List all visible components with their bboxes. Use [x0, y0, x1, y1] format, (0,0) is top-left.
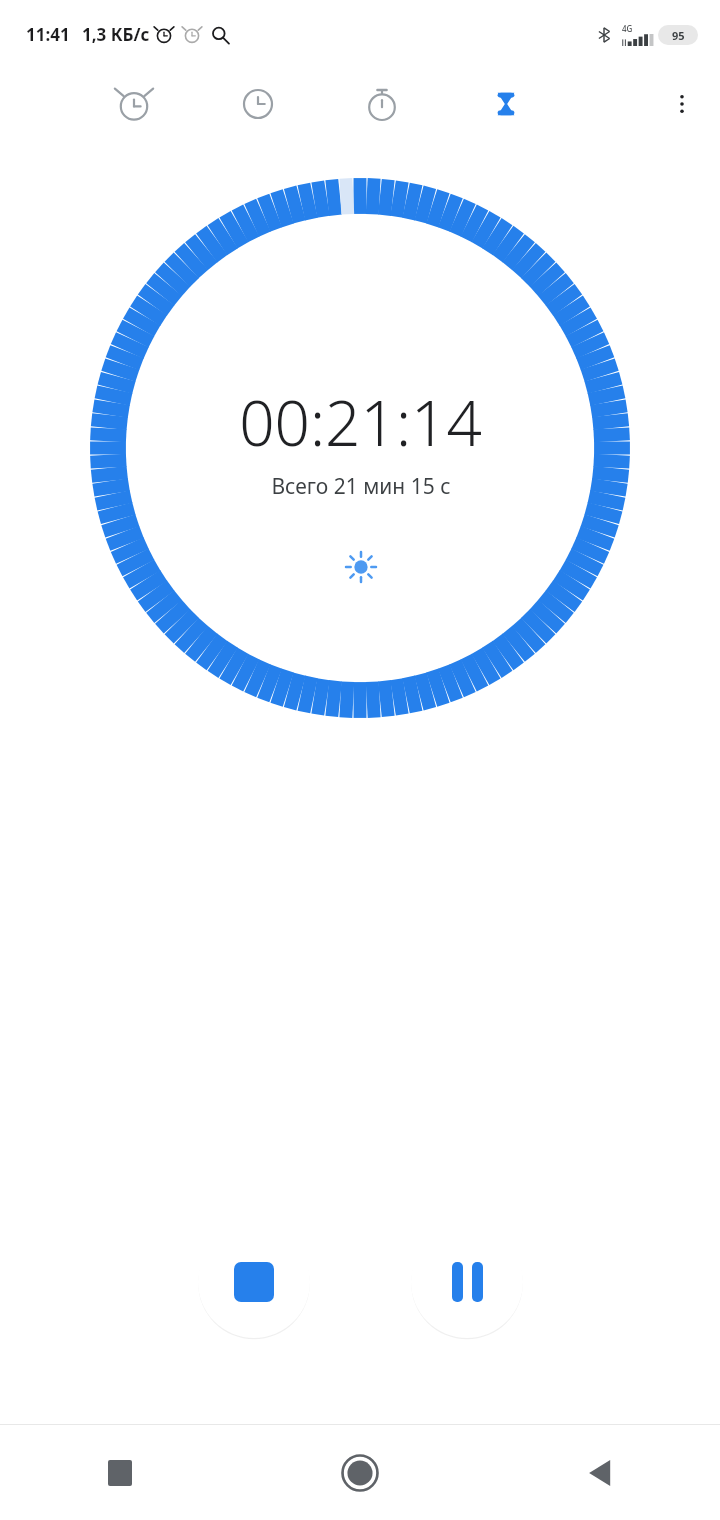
staticText: Всего 21 мин 15 с — [271, 472, 451, 501]
button[interactable]: Stopwatch — [352, 74, 412, 134]
staticText: 11:41 — [26, 23, 70, 46]
button[interactable]: World clock — [228, 74, 288, 134]
button[interactable]: Recent apps — [0, 1425, 240, 1520]
button[interactable]: Back — [480, 1425, 720, 1520]
button[interactable]: Timer — [476, 74, 536, 134]
staticText: 95 — [672, 28, 685, 43]
button[interactable]: Stop — [198, 1226, 310, 1338]
staticText: 00:21:14 — [239, 380, 482, 464]
button[interactable]: Pause — [411, 1226, 523, 1338]
button[interactable]: More options — [654, 76, 710, 132]
button[interactable]: Home — [240, 1425, 480, 1520]
staticText: 1,3 КБ/с — [82, 23, 150, 46]
staticText: 4G — [622, 23, 633, 34]
button[interactable]: Keep screen on — [333, 539, 389, 595]
button[interactable]: Alarm — [104, 74, 164, 134]
